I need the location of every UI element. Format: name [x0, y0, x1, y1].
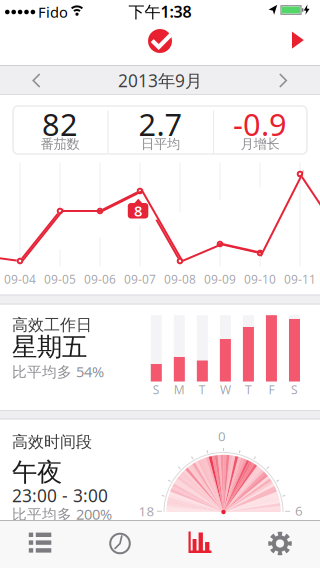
- staticText: 高效时间段: [12, 432, 92, 452]
- button[interactable]: 任务列表: [0, 521, 80, 568]
- staticText: 2.7: [138, 104, 182, 144]
- button[interactable]: 上个月: [14, 66, 58, 95]
- staticText: 月增长: [240, 136, 279, 152]
- staticText: 星期五: [12, 331, 87, 363]
- staticText: 09-07: [124, 271, 156, 287]
- staticText: 23:00 - 3:00: [12, 484, 108, 507]
- staticText: 日平均: [141, 136, 180, 152]
- button[interactable]: 下个月: [261, 66, 305, 95]
- staticText: M: [174, 381, 185, 397]
- staticText: 高效工作日: [12, 315, 92, 335]
- staticText: 2013年9月: [118, 69, 202, 92]
- staticText: 6: [295, 502, 303, 519]
- staticText: -0.9: [233, 104, 287, 144]
- staticText: 09-04: [4, 271, 36, 287]
- staticText: 09-09: [204, 271, 236, 287]
- staticText: T: [245, 381, 252, 397]
- button[interactable]: 统计: [160, 521, 240, 568]
- staticText: 09-06: [84, 271, 116, 287]
- staticText: 09-05: [44, 271, 76, 287]
- staticText: 0: [218, 427, 226, 445]
- button[interactable]: 开始番茄钟: [275, 18, 319, 62]
- staticText: S: [291, 381, 298, 397]
- staticText: 18: [138, 502, 154, 520]
- staticText: 8: [134, 201, 142, 221]
- staticText: W: [220, 381, 231, 397]
- button[interactable]: 历史记录: [80, 521, 160, 568]
- staticText: S: [153, 381, 160, 397]
- staticText: 番茄数: [40, 136, 79, 152]
- staticText: 09-10: [244, 271, 276, 287]
- staticText: 09-11: [284, 271, 316, 287]
- staticText: F: [268, 381, 274, 397]
- staticText: 比平均多 200%: [12, 504, 112, 524]
- staticText: 82: [42, 104, 78, 144]
- staticText: 比平均多 54%: [12, 362, 104, 381]
- staticText: T: [199, 381, 206, 397]
- staticText: 午夜: [12, 457, 62, 488]
- staticText: 下午1:38: [128, 1, 191, 22]
- staticText: 09-08: [164, 271, 196, 287]
- button[interactable]: 设置: [240, 521, 320, 568]
- staticText: Fido: [38, 2, 68, 22]
